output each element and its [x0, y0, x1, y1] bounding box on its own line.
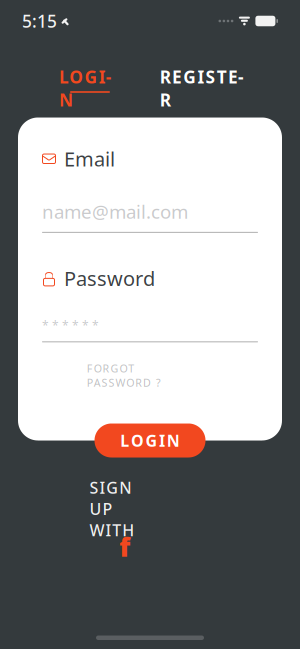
staticText: LOGIN — [120, 430, 180, 451]
staticText: name@mail.com — [42, 199, 188, 224]
button[interactable]: LOGIN — [94, 423, 205, 457]
staticText: SIGN UP WITH — [89, 477, 160, 519]
staticText: 5:15 — [22, 9, 57, 32]
staticText: REGISTER — [160, 65, 250, 88]
staticText: FORGOT PASSWORD ? — [87, 361, 213, 375]
staticText: LOGIN — [59, 65, 121, 88]
button[interactable]: Sign up with Facebook — [110, 533, 140, 559]
staticText: f — [119, 529, 130, 564]
staticText: * * * * * * — [42, 317, 99, 333]
staticText: Password — [64, 265, 155, 291]
button[interactable]: LOGIN — [35, 62, 145, 96]
button[interactable]: FORGOT PASSWORD ? — [42, 354, 258, 382]
button[interactable]: REGISTER — [145, 62, 265, 96]
staticText: Email — [64, 145, 115, 172]
